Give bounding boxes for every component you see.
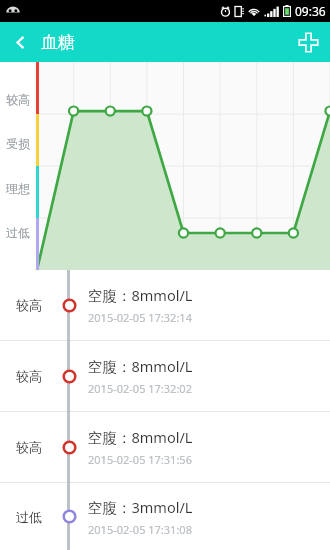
button[interactable]: Back <box>0 22 85 62</box>
staticText: 较高 <box>16 368 42 384</box>
staticText: 受损 <box>6 136 30 151</box>
staticText: 空腹：8mmol/L <box>88 285 193 305</box>
button[interactable]: 较高 <box>0 270 330 340</box>
staticText: 2015-02-05 17:31:56 <box>88 452 192 467</box>
staticText: 2015-02-05 17:32:02 <box>88 381 192 396</box>
staticText: 过低 <box>6 225 30 240</box>
staticText: 空腹：3mmol/L <box>88 497 193 517</box>
other: Back <box>13 35 28 50</box>
staticText: 较高 <box>16 297 42 313</box>
button[interactable]: 较高 <box>0 341 330 411</box>
staticText: 过低 <box>16 509 42 525</box>
staticText: 较高 <box>6 92 30 107</box>
staticText: 理想 <box>6 181 30 196</box>
button[interactable]: 过低 <box>0 483 330 550</box>
staticText: 较高 <box>16 439 42 455</box>
staticText: 空腹：8mmol/L <box>88 356 193 376</box>
button[interactable]: Add record <box>286 22 330 62</box>
button[interactable]: 较高 <box>0 412 330 482</box>
staticText: 2015-02-05 17:32:14 <box>88 310 192 325</box>
staticText: 空腹：8mmol/L <box>88 427 193 447</box>
staticText: 09:36 <box>295 3 326 19</box>
staticText: 血糖 <box>41 32 75 53</box>
staticText: 2015-02-05 17:31:08 <box>88 522 192 537</box>
